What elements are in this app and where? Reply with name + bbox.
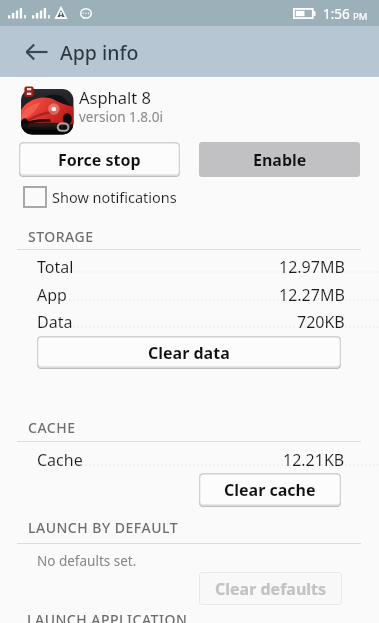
staticText: version 1.8.0i bbox=[79, 108, 163, 126]
staticText: PM bbox=[353, 10, 368, 23]
button[interactable]: Enable bbox=[199, 142, 360, 177]
staticText: Total bbox=[37, 256, 74, 276]
button[interactable]: Clear data bbox=[37, 336, 341, 369]
staticText: Clear data bbox=[148, 342, 230, 364]
staticText: LAUNCH BY DEFAULT bbox=[28, 518, 179, 537]
staticText: Asphalt 8 bbox=[79, 86, 151, 108]
staticText: 12.27MB bbox=[279, 284, 345, 304]
staticText: 12.21KB bbox=[283, 449, 345, 469]
staticText: Enable bbox=[253, 149, 307, 171]
staticText: No defaults set. bbox=[37, 552, 137, 570]
staticText: LAUNCH APPLICATION bbox=[27, 610, 188, 623]
button[interactable]: Show notifications bbox=[20, 183, 182, 211]
staticText: Data bbox=[37, 311, 73, 331]
button[interactable]: Back bbox=[20, 36, 52, 68]
staticText: STORAGE bbox=[28, 227, 94, 246]
staticText: Cache bbox=[37, 449, 83, 469]
staticText: 1:56 bbox=[323, 5, 350, 23]
button[interactable]: Force stop bbox=[19, 142, 180, 177]
staticText: 12.97MB bbox=[279, 256, 345, 276]
button[interactable]: Clear cache bbox=[199, 473, 341, 507]
staticText: Show notifications bbox=[52, 187, 177, 207]
staticText: CACHE bbox=[28, 418, 76, 437]
staticText: Clear defaults bbox=[215, 578, 327, 600]
staticText: App info bbox=[60, 39, 139, 66]
staticText: Force stop bbox=[58, 149, 141, 171]
staticText: App bbox=[37, 284, 67, 304]
staticText: Clear cache bbox=[224, 479, 316, 501]
staticText: 720KB bbox=[297, 311, 345, 331]
button[interactable]: Clear defaults bbox=[199, 572, 342, 605]
